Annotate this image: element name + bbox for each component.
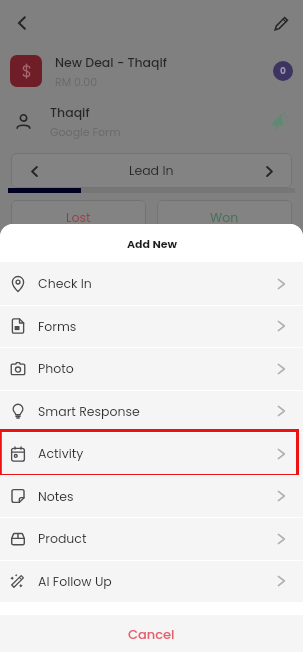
button[interactable]: Cancel — [0, 615, 303, 652]
staticText: Add New — [127, 236, 177, 251]
button[interactable]: Edit — [261, 3, 301, 43]
staticText: RM 0.00 — [55, 74, 98, 89]
button[interactable]: Forms — [0, 305, 303, 347]
staticText: Smart Response — [38, 403, 275, 420]
button[interactable]: Photo — [0, 347, 303, 390]
button[interactable]: Next stage — [254, 156, 284, 186]
button[interactable]: Won — [157, 200, 292, 235]
staticText: Photo — [38, 360, 275, 377]
button[interactable]: Lost — [11, 200, 146, 235]
staticText: Lead In — [129, 162, 174, 179]
button[interactable]: Activity — [0, 432, 303, 475]
button[interactable]: Product — [0, 517, 303, 560]
staticText: Activity — [38, 445, 275, 462]
staticText: Lost — [66, 209, 91, 226]
staticText: New Deal - Thaqif — [55, 54, 168, 71]
staticText: AI Follow Up — [38, 573, 275, 590]
button[interactable]: Check In — [0, 262, 303, 305]
staticText: Product — [38, 530, 275, 547]
button[interactable]: Previous stage — [19, 156, 49, 186]
button[interactable]: AI Follow Up — [0, 560, 303, 602]
staticText: Check In — [38, 275, 275, 292]
button[interactable]: Back — [2, 3, 42, 43]
staticText: Notes — [38, 488, 275, 505]
button[interactable]: Smart Response — [0, 390, 303, 432]
staticText: 0 — [280, 65, 286, 78]
staticText: Forms — [38, 318, 275, 335]
staticText: Cancel — [128, 625, 175, 643]
staticText: Won — [210, 209, 239, 226]
button[interactable]: Notes — [0, 475, 303, 517]
button[interactable]: Lead In — [11, 153, 292, 188]
staticText: Google Form — [50, 124, 121, 139]
staticText: Thaqif — [50, 104, 90, 121]
